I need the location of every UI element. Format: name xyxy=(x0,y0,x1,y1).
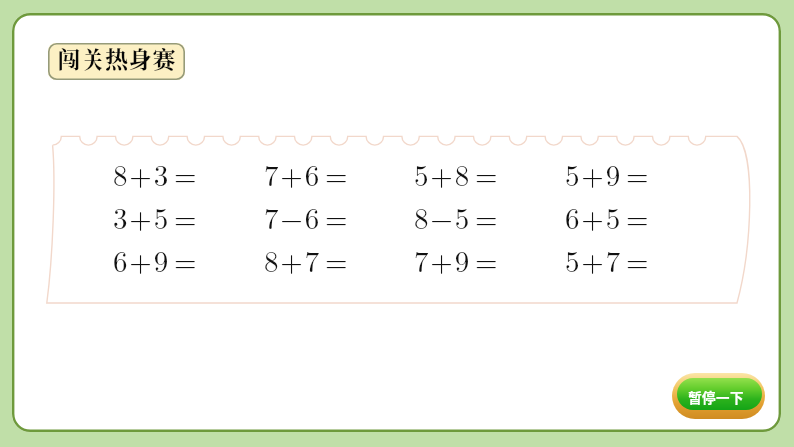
staticText: 6 + 5 = xyxy=(565,196,649,237)
button[interactable]: 闯关热身赛 xyxy=(48,43,185,80)
staticText: 7 + 9 = xyxy=(414,239,498,280)
staticText: 5 + 7 = xyxy=(565,239,649,280)
staticText: 闯关热身赛 xyxy=(57,43,176,75)
staticText: 8 + 7 = xyxy=(264,239,348,280)
staticText: 6 + 9 = xyxy=(113,239,197,280)
staticText: 7 − 6 = xyxy=(264,196,348,237)
staticText: 8 + 3 = xyxy=(113,153,197,194)
staticText: 7 + 6 = xyxy=(264,153,348,194)
staticText: 3 + 5 = xyxy=(113,196,197,237)
staticText: 5 + 8 = xyxy=(414,153,498,194)
staticText: 5 + 9 = xyxy=(565,153,649,194)
button[interactable]: 暂停一下 xyxy=(672,373,765,419)
staticText: 8 − 5 = xyxy=(414,196,498,237)
staticText: 暂停一下 xyxy=(688,387,744,407)
